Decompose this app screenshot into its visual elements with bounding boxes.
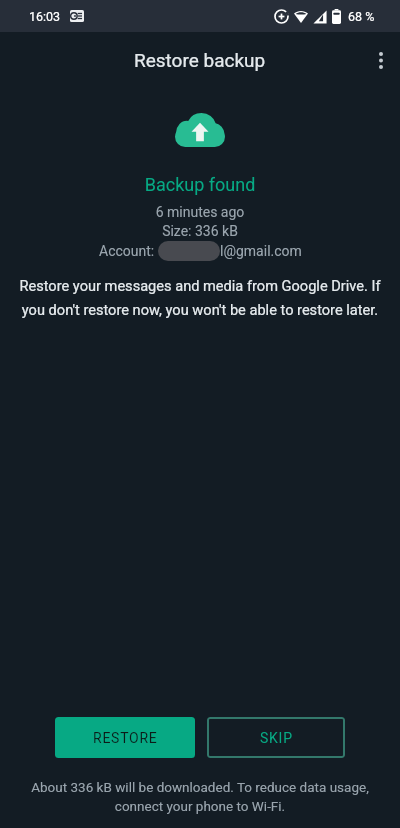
staticText: 6 minutes ago xyxy=(0,204,400,220)
staticText: l@gmail.com xyxy=(220,243,302,259)
button[interactable]: RESTORE xyxy=(55,717,195,758)
staticText: 16:03 xyxy=(29,9,61,24)
button[interactable]: SKIP xyxy=(207,717,345,758)
staticText: 68 % xyxy=(348,9,375,24)
staticText: Backup found xyxy=(0,174,400,195)
staticText: Restore backup xyxy=(134,49,266,71)
staticText: Account: xyxy=(99,243,158,259)
staticText: About 336 kB will be downloaded. To redu… xyxy=(20,779,380,814)
button[interactable]: More options xyxy=(361,32,400,88)
staticText: Size: 336 kB xyxy=(0,223,400,239)
staticText: RESTORE xyxy=(93,730,158,746)
staticText: Restore your messages and media from Goo… xyxy=(16,277,384,319)
staticText: SKIP xyxy=(260,730,293,746)
